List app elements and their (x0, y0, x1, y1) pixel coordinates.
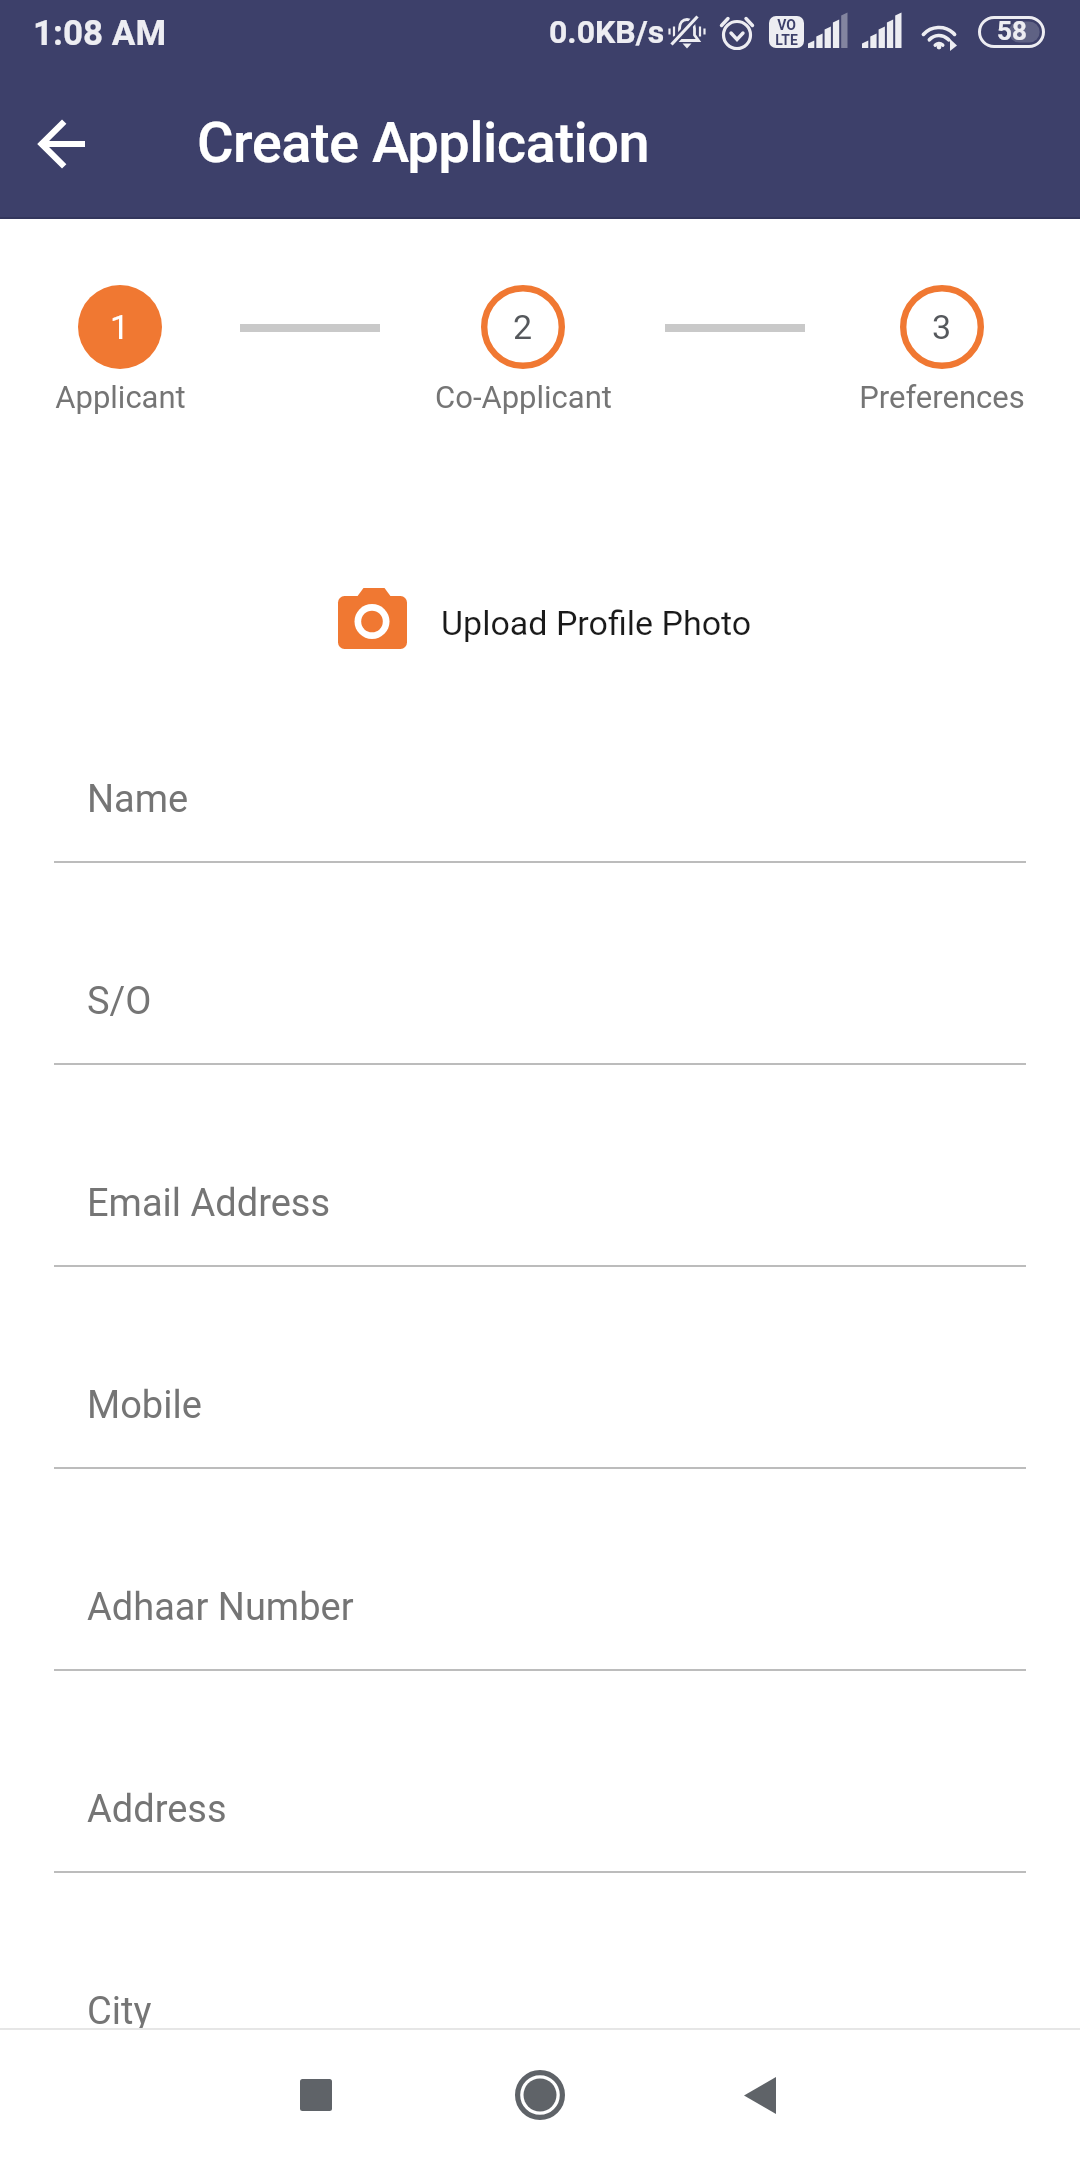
staticText: City (87, 1989, 152, 2034)
staticText: Mobile (87, 1383, 202, 1428)
staticText: 3 (932, 307, 952, 347)
staticText: 1:08 AM (33, 13, 167, 54)
staticText: VO LTE (775, 17, 798, 48)
staticText: 2 (513, 307, 533, 347)
staticText: 0.0KB/s (549, 13, 665, 51)
staticText: Name (87, 777, 189, 822)
staticText: 1 (110, 307, 130, 347)
button[interactable]: Recent apps (256, 2035, 376, 2155)
staticText: Address (87, 1787, 227, 1832)
button[interactable]: Home (480, 2035, 600, 2155)
staticText: Create Application (197, 110, 650, 176)
button[interactable]: Back (14, 96, 110, 192)
button[interactable]: Upload Profile Photo (320, 578, 768, 662)
staticText: Adhaar Number (87, 1585, 354, 1630)
button[interactable]: Back (700, 2035, 820, 2155)
staticText: Applicant (55, 379, 186, 415)
staticText: Upload Profile Photo (441, 603, 752, 643)
staticText: 58 (997, 16, 1027, 46)
button[interactable]: 2 (363, 285, 683, 415)
button[interactable]: 3 (782, 285, 1080, 415)
button[interactable]: 1 (0, 285, 280, 415)
staticText: Preferences (859, 379, 1025, 415)
staticText: S/O (87, 979, 152, 1024)
staticText: Email Address (87, 1181, 331, 1226)
staticText: Co-Applicant (435, 379, 612, 415)
